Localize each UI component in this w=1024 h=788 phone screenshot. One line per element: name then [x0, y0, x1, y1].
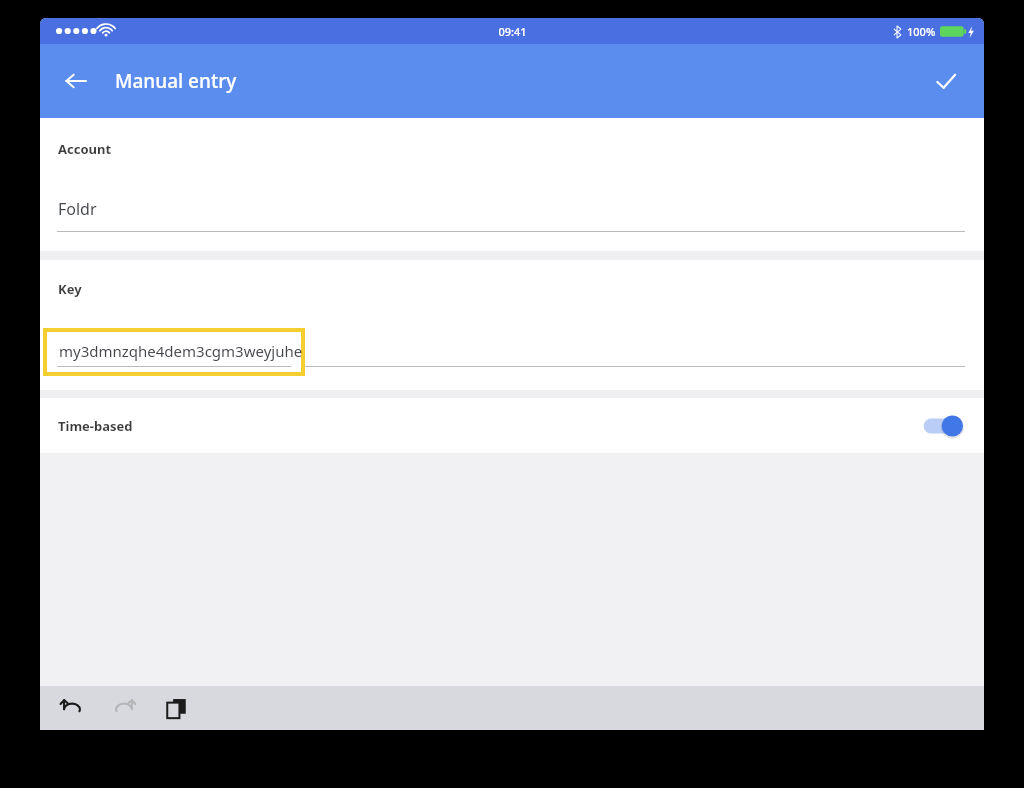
- staticText: Account: [58, 140, 112, 158]
- staticText: Foldr: [58, 198, 97, 220]
- staticText: Key: [58, 280, 82, 298]
- button[interactable]: Copy: [158, 690, 194, 726]
- button[interactable]: Save: [922, 57, 970, 105]
- button[interactable]: Undo: [54, 690, 90, 726]
- button[interactable]: Time-based toggle: [919, 411, 965, 441]
- staticText: Time-based: [58, 417, 133, 435]
- button[interactable]: Time-based: [40, 398, 984, 453]
- staticText: my3dmnzqhe4dem3cgm3weyjuhe: [59, 341, 303, 361]
- button[interactable]: Back: [52, 57, 100, 105]
- staticText: 100%: [907, 24, 936, 39]
- staticText: Manual entry: [115, 68, 237, 94]
- staticText: 09:41: [498, 24, 527, 39]
- button[interactable]: Redo: [106, 690, 142, 726]
